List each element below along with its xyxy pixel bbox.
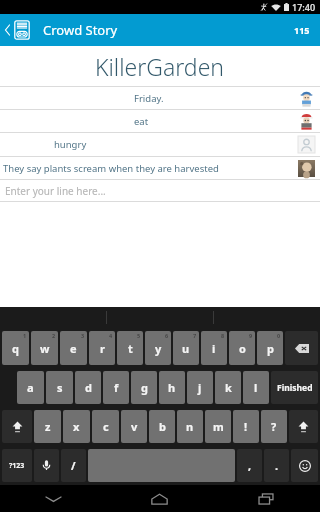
- staticText: ,: [248, 458, 252, 473]
- button[interactable]: p: [257, 331, 283, 365]
- button[interactable]: eat: [0, 110, 320, 132]
- staticText: b: [159, 419, 166, 434]
- staticText: 2: [52, 332, 56, 339]
- staticText: !: [244, 419, 248, 434]
- button[interactable]: a: [17, 371, 44, 404]
- button[interactable]: .: [264, 449, 289, 482]
- staticText: a: [27, 380, 34, 395]
- staticText: KillerGarden: [95, 51, 225, 82]
- button[interactable]: r: [89, 331, 115, 365]
- button[interactable]: They say plants scream when they are har…: [0, 157, 320, 179]
- button[interactable]: ?123: [2, 449, 32, 482]
- staticText: w: [40, 341, 50, 356]
- button[interactable]: i: [201, 331, 227, 365]
- button[interactable]: Hide keyboard: [0, 485, 106, 512]
- button[interactable]: v: [121, 410, 147, 443]
- button[interactable]: Recent apps: [213, 485, 320, 512]
- staticText: 9: [249, 332, 253, 339]
- button[interactable]: b: [149, 410, 175, 443]
- button[interactable]: h: [159, 371, 185, 404]
- button[interactable]: Backspace: [285, 331, 318, 365]
- button[interactable]: j: [187, 371, 213, 404]
- staticText: k: [225, 380, 232, 395]
- button[interactable]: Back to story list: [0, 14, 36, 46]
- staticText: f: [114, 380, 119, 395]
- button[interactable]: o: [229, 331, 255, 365]
- staticText: 4: [109, 332, 113, 339]
- staticText: 8: [221, 332, 225, 339]
- staticText: hungry: [54, 138, 87, 151]
- staticText: i: [212, 341, 216, 356]
- staticText: /: [71, 458, 76, 473]
- staticText: m: [213, 419, 224, 434]
- button[interactable]: d: [75, 371, 101, 404]
- button[interactable]: e: [60, 331, 87, 365]
- staticText: t: [128, 341, 133, 356]
- button[interactable]: x: [63, 410, 90, 443]
- button[interactable]: ,: [237, 449, 262, 482]
- staticText: d: [85, 380, 92, 395]
- button[interactable]: l: [243, 371, 269, 404]
- button[interactable]: /: [61, 449, 86, 482]
- button[interactable]: c: [92, 410, 119, 443]
- button[interactable]: g: [131, 371, 157, 404]
- staticText: q: [12, 341, 19, 356]
- button[interactable]: t: [117, 331, 143, 365]
- button[interactable]: ?: [261, 410, 287, 443]
- staticText: 1: [23, 332, 27, 339]
- staticText: ?123: [9, 461, 25, 471]
- button[interactable]: Friday.: [0, 87, 320, 109]
- button[interactable]: !: [233, 410, 259, 443]
- staticText: 3: [81, 332, 85, 339]
- staticText: Friday.: [134, 92, 164, 105]
- staticText: 6: [165, 332, 169, 339]
- button[interactable]: y: [145, 331, 171, 365]
- button[interactable]: Enter your line here...: [0, 180, 320, 201]
- staticText: Enter your line here...: [5, 184, 106, 198]
- staticText: s: [57, 380, 63, 395]
- button[interactable]: Finished: [271, 371, 318, 404]
- staticText: ?: [271, 419, 277, 434]
- staticText: c: [103, 419, 109, 434]
- button[interactable]: Shift: [2, 410, 32, 443]
- staticText: .: [275, 458, 279, 473]
- staticText: 0: [277, 332, 281, 339]
- staticText: 17:40: [292, 1, 316, 13]
- button[interactable]: f: [103, 371, 129, 404]
- staticText: j: [198, 380, 202, 395]
- button[interactable]: Home: [106, 485, 213, 512]
- staticText: u: [182, 341, 190, 356]
- button[interactable]: Voice input: [34, 449, 59, 482]
- staticText: x: [73, 419, 80, 434]
- button[interactable]: Emoji: [291, 449, 318, 482]
- button[interactable]: Lines remaining 115: [284, 14, 320, 46]
- staticText: y: [155, 341, 162, 356]
- button[interactable]: u: [173, 331, 199, 365]
- staticText: o: [239, 341, 246, 356]
- staticText: 5: [137, 332, 141, 339]
- staticText: Finished: [277, 382, 313, 394]
- staticText: Crowd Story: [43, 21, 118, 39]
- button[interactable]: Shift: [289, 410, 318, 443]
- button[interactable]: k: [215, 371, 241, 404]
- staticText: e: [70, 341, 77, 356]
- staticText: 115: [294, 24, 310, 36]
- staticText: eat: [134, 115, 149, 128]
- button[interactable]: w: [31, 331, 58, 365]
- staticText: They say plants scream when they are har…: [3, 162, 219, 175]
- staticText: h: [168, 380, 176, 395]
- button[interactable]: hungry: [0, 133, 320, 156]
- staticText: 7: [193, 332, 197, 339]
- staticText: z: [45, 419, 51, 434]
- button[interactable]: z: [34, 410, 61, 443]
- button[interactable]: q: [2, 331, 29, 365]
- button[interactable]: m: [205, 410, 231, 443]
- staticText: p: [267, 341, 274, 356]
- button[interactable]: n: [177, 410, 203, 443]
- staticText: r: [100, 341, 105, 356]
- button[interactable]: s: [46, 371, 73, 404]
